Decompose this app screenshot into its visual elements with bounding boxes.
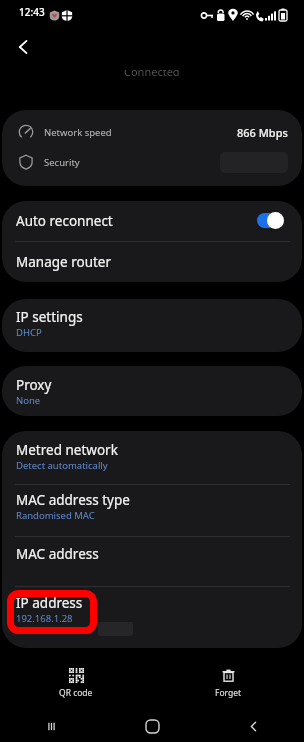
staticText: 866 Mbps bbox=[237, 125, 288, 140]
staticText: Metred network bbox=[16, 441, 118, 459]
staticText: None bbox=[16, 394, 41, 407]
button[interactable]: Forget bbox=[152, 668, 304, 699]
staticText: DHCP bbox=[16, 326, 42, 339]
button[interactable]: Auto reconnect bbox=[2, 201, 302, 241]
staticText: MAC address bbox=[16, 545, 99, 563]
button[interactable] bbox=[257, 212, 284, 229]
button[interactable]: QR code bbox=[0, 668, 152, 699]
button[interactable]: Back bbox=[203, 710, 304, 742]
staticText: Auto reconnect bbox=[16, 212, 113, 230]
staticText: Forget bbox=[215, 687, 242, 699]
staticText: IP address bbox=[16, 594, 83, 612]
staticText: MAC address type bbox=[16, 491, 130, 509]
staticText: Network speed bbox=[44, 126, 112, 139]
button[interactable]: Manage router bbox=[2, 242, 302, 282]
button[interactable]: Recents bbox=[0, 710, 102, 742]
staticText: Detect automatically bbox=[16, 459, 108, 472]
button[interactable]: MAC address type bbox=[2, 485, 302, 536]
staticText: Security bbox=[44, 156, 80, 169]
staticText: 12:43 bbox=[19, 5, 45, 19]
button[interactable]: Home bbox=[102, 710, 203, 742]
staticText: IP settings bbox=[16, 308, 83, 326]
button[interactable]: IP address bbox=[2, 587, 302, 648]
button[interactable]: Metred network bbox=[2, 431, 302, 484]
staticText: QR code bbox=[59, 687, 93, 699]
staticText: Randomised MAC bbox=[16, 509, 95, 522]
button[interactable]: IP settings bbox=[2, 299, 302, 352]
button[interactable]: Proxy bbox=[2, 366, 302, 416]
staticText: Proxy bbox=[16, 376, 52, 394]
staticText: Connected bbox=[124, 70, 180, 77]
button[interactable]: Back bbox=[7, 31, 39, 63]
staticText: 192.168.1.28 bbox=[16, 612, 73, 625]
staticText: Manage router bbox=[16, 253, 112, 271]
button[interactable]: MAC address bbox=[2, 537, 302, 586]
